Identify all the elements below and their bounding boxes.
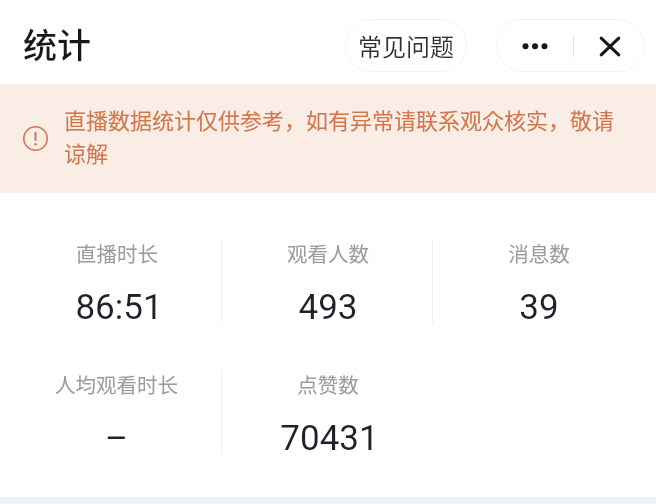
staticText: 常见问题 bbox=[358, 28, 454, 63]
staticText: 统计 bbox=[23, 19, 91, 68]
button[interactable]: More options bbox=[496, 19, 573, 72]
staticText: 直播数据统计仅供参考，如有异常请联系观众核实，敬请 谅解 bbox=[64, 103, 615, 168]
staticText: 观看人数 bbox=[287, 238, 369, 268]
staticText: 人均观看时长 bbox=[55, 369, 178, 399]
staticText: 493 bbox=[298, 287, 358, 328]
button[interactable]: Close bbox=[574, 19, 645, 72]
staticText: 70431 bbox=[280, 418, 379, 459]
staticText: 86:51 bbox=[75, 287, 163, 328]
staticText: – bbox=[105, 418, 128, 459]
staticText: 39 bbox=[519, 287, 559, 328]
staticText: 直播时长 bbox=[76, 238, 158, 268]
staticText: 点赞数 bbox=[297, 369, 359, 399]
staticText: 消息数 bbox=[508, 238, 570, 268]
button[interactable]: 常见问题 bbox=[345, 19, 467, 72]
